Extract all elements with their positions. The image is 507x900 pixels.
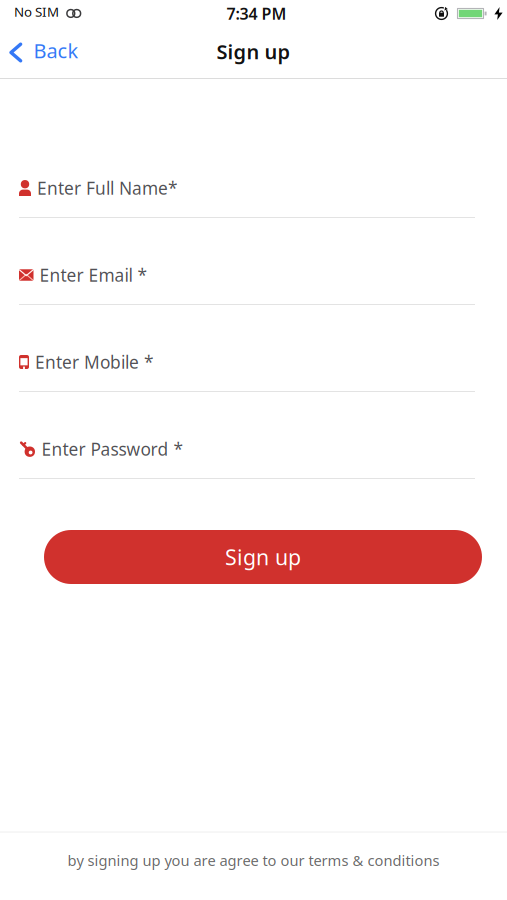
button[interactable]: Sign up bbox=[44, 530, 482, 584]
button[interactable]: Enter Password * bbox=[19, 434, 475, 479]
staticText: Sign up bbox=[216, 38, 290, 65]
button[interactable]: Back bbox=[0, 39, 78, 66]
staticText: No SIM bbox=[14, 3, 59, 20]
staticText: Enter Email * bbox=[39, 263, 147, 286]
staticText: Enter Mobile * bbox=[35, 350, 154, 373]
staticText: 7:34 PM bbox=[226, 3, 286, 24]
button[interactable]: Enter Full Name* bbox=[19, 173, 475, 218]
staticText: Sign up bbox=[225, 543, 301, 571]
staticText: Enter Full Name* bbox=[37, 176, 178, 199]
staticText: Back bbox=[33, 37, 78, 64]
staticText: Enter Password * bbox=[41, 437, 183, 460]
button[interactable]: Enter Email * bbox=[19, 260, 475, 305]
button[interactable]: Enter Mobile * bbox=[19, 347, 475, 392]
staticText: by signing up you are agree to our terms… bbox=[67, 850, 439, 870]
